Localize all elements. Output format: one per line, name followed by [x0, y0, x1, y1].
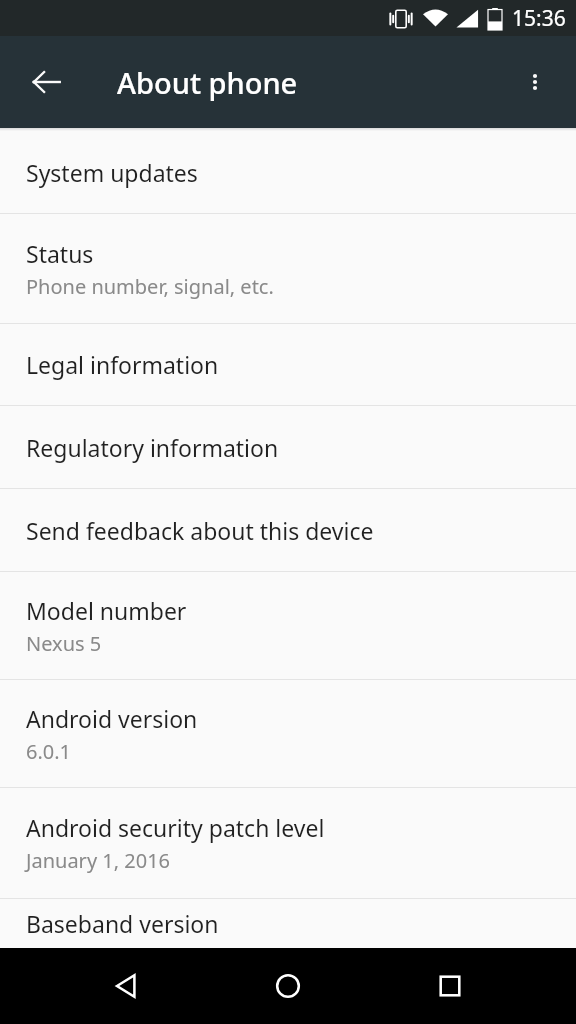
staticText: System updates: [26, 157, 198, 188]
button[interactable]: Model number: [0, 572, 576, 679]
staticText: 6.0.1: [26, 738, 72, 765]
button[interactable]: Send feedback about this device: [0, 489, 576, 571]
button[interactable]: Back: [90, 950, 162, 1022]
button[interactable]: Regulatory information: [0, 406, 576, 488]
button[interactable]: System updates: [0, 131, 576, 213]
staticText: Regulatory information: [26, 432, 279, 463]
staticText: Android security patch level: [26, 812, 325, 843]
button[interactable]: Back: [18, 54, 74, 110]
staticText: Legal information: [26, 349, 219, 380]
staticText: Send feedback about this device: [26, 515, 374, 546]
button[interactable]: Android version: [0, 680, 576, 787]
button[interactable]: Recent apps: [414, 950, 486, 1022]
staticText: 15:36: [512, 4, 566, 33]
button[interactable]: Status: [0, 214, 576, 323]
staticText: Baseband version: [26, 908, 219, 939]
button[interactable]: More options: [507, 54, 563, 110]
staticText: Status: [26, 238, 94, 269]
button[interactable]: Legal information: [0, 324, 576, 405]
staticText: January 1, 2016: [26, 847, 171, 874]
staticText: About phone: [117, 63, 298, 102]
staticText: Model number: [26, 595, 187, 626]
staticText: Android version: [26, 703, 198, 734]
staticText: Nexus 5: [26, 630, 102, 657]
button[interactable]: Android security patch level: [0, 788, 576, 898]
button[interactable]: Home: [252, 950, 324, 1022]
staticText: Phone number, signal, etc.: [26, 273, 274, 300]
button[interactable]: Baseband version: [0, 899, 576, 948]
